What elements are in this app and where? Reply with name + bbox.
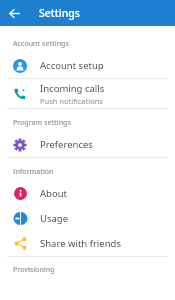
button[interactable]: About [0,181,175,206]
staticText: Account settings [13,39,175,49]
staticText: Program settings [13,118,175,128]
button[interactable]: Back [5,4,23,22]
button[interactable]: Incoming calls [0,79,175,108]
button[interactable]: Usage [0,206,175,231]
staticText: Usage [40,212,69,225]
staticText: Information [13,167,175,177]
staticText: About [40,187,67,200]
staticText: Settings [39,6,80,20]
staticText: Provisioning [13,265,175,275]
staticText: Push notifications [40,96,103,106]
staticText: Preferences [40,138,93,151]
staticText: Share with friends [40,237,121,250]
button[interactable]: Account setup [0,53,175,78]
button[interactable]: Preferences [0,132,175,157]
staticText: Incoming calls [40,82,105,95]
button[interactable]: Share with friends [0,231,175,256]
staticText: Account setup [40,59,104,72]
